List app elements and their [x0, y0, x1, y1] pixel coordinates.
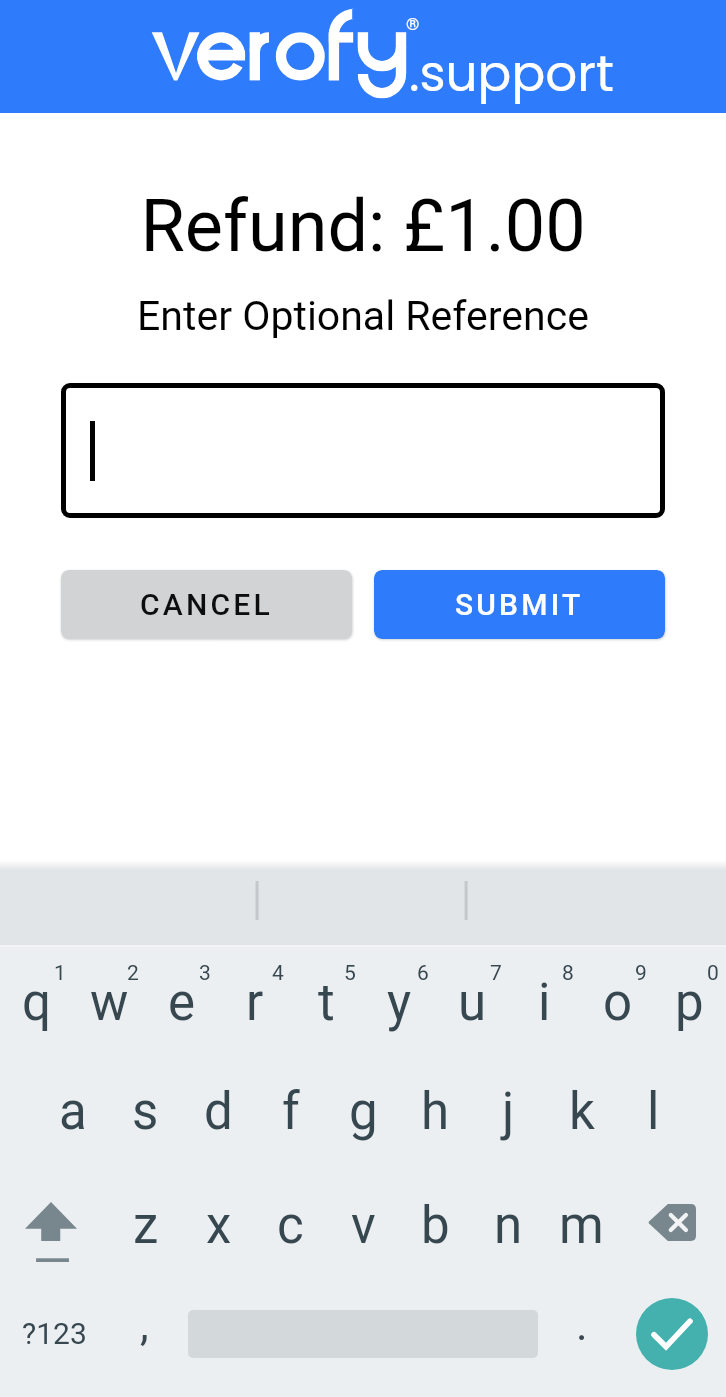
button[interactable]: x [182, 1171, 255, 1283]
staticText: 9 [635, 961, 647, 986]
staticText: l [647, 1082, 660, 1142]
staticText: r [246, 973, 264, 1033]
staticText: SUBMIT [455, 587, 584, 622]
button[interactable]: n [472, 1171, 545, 1283]
staticText: . [576, 1299, 588, 1351]
button[interactable]: f [254, 1059, 327, 1171]
button[interactable] [61, 383, 665, 518]
staticText: 6 [417, 961, 429, 986]
button[interactable]: d [182, 1059, 255, 1171]
staticText: 4 [272, 961, 284, 986]
staticText: y [387, 973, 412, 1033]
button[interactable]: q [0, 947, 73, 1059]
button[interactable]: ?123 [0, 1283, 109, 1395]
staticText: e [168, 973, 196, 1033]
staticText: b [421, 1196, 450, 1256]
staticText: o [603, 973, 633, 1033]
staticText: 1 [54, 961, 66, 986]
button[interactable]: l [617, 1059, 690, 1171]
button[interactable]: c [254, 1171, 327, 1283]
button[interactable]: a [36, 1059, 109, 1171]
button[interactable]: g [327, 1059, 400, 1171]
button[interactable]: w [73, 947, 146, 1059]
button[interactable]: z [109, 1171, 182, 1283]
button[interactable]: r [218, 947, 291, 1059]
button[interactable]: u [436, 947, 509, 1059]
staticText: s [132, 1082, 159, 1142]
staticText: j [502, 1082, 515, 1142]
button[interactable]: j [472, 1059, 545, 1171]
staticText: 2 [127, 961, 139, 986]
staticText: i [538, 973, 551, 1033]
button[interactable]: o [581, 947, 654, 1059]
button[interactable]: Backspace [617, 1171, 726, 1283]
button[interactable]: h [399, 1059, 472, 1171]
button[interactable]: Space [179, 1283, 547, 1395]
button[interactable]: v [327, 1171, 400, 1283]
button[interactable]: k [545, 1059, 618, 1171]
staticText: f [282, 1082, 300, 1142]
staticText: h [421, 1082, 450, 1142]
button[interactable]: , [109, 1283, 179, 1395]
staticText: g [349, 1082, 378, 1142]
staticText: w [90, 973, 129, 1033]
button[interactable]: t [290, 947, 363, 1059]
staticText: v [351, 1196, 376, 1256]
staticText: n [494, 1196, 523, 1256]
button[interactable]: s [109, 1059, 182, 1171]
staticText: 5 [344, 961, 356, 986]
button[interactable]: Enter [636, 1298, 708, 1370]
staticText: , [140, 1299, 149, 1351]
staticText: Refund: £1.00 [0, 184, 726, 268]
staticText: a [59, 1082, 87, 1142]
staticText: p [675, 973, 704, 1033]
button[interactable]: b [399, 1171, 472, 1283]
staticText: 7 [490, 961, 502, 986]
button[interactable]: i [508, 947, 581, 1059]
staticText: q [22, 973, 51, 1033]
staticText: .support [409, 39, 615, 109]
staticText: 8 [562, 961, 574, 986]
staticText: Enter Optional Reference [0, 292, 726, 340]
staticText: t [318, 973, 335, 1033]
button[interactable]: . [547, 1283, 617, 1395]
button[interactable]: e [145, 947, 218, 1059]
staticText: d [204, 1082, 233, 1142]
staticText: k [569, 1082, 595, 1142]
staticText: c [277, 1196, 304, 1256]
staticText: z [133, 1196, 159, 1256]
button[interactable]: y [363, 947, 436, 1059]
staticText: ?123 [22, 1316, 87, 1351]
staticText: u [458, 973, 487, 1033]
staticText: CANCEL [140, 587, 273, 622]
button[interactable]: CANCEL [61, 570, 352, 639]
staticText: 3 [199, 961, 211, 986]
staticText: 0 [707, 961, 719, 986]
button[interactable]: SUBMIT [374, 570, 665, 639]
button[interactable]: Shift [0, 1171, 109, 1283]
button[interactable]: m [545, 1171, 618, 1283]
staticText: x [206, 1196, 232, 1256]
staticText: m [559, 1196, 604, 1256]
button[interactable]: p [653, 947, 726, 1059]
staticText: ® [406, 14, 420, 34]
